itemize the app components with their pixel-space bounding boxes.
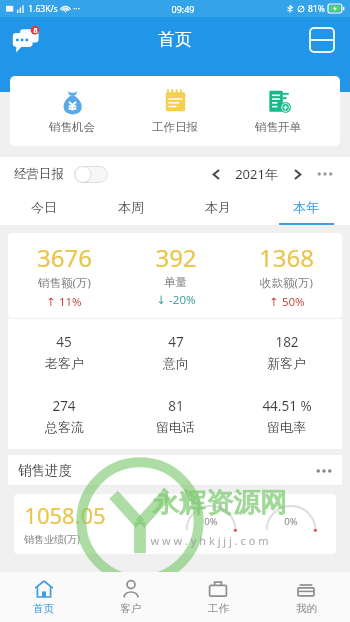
staticText: ↑ 50% xyxy=(269,294,305,310)
button[interactable]: Scan xyxy=(306,24,338,56)
staticText: ↑ 11% xyxy=(46,294,82,310)
button[interactable]: Next year xyxy=(286,163,308,185)
button[interactable]: 44.51 % xyxy=(231,397,342,435)
staticText: 我的 xyxy=(296,602,317,615)
staticText: 1.63K/s xyxy=(28,3,58,15)
button[interactable]: Messages xyxy=(9,23,43,57)
button[interactable]: 本年 xyxy=(262,191,350,223)
staticText: 274 xyxy=(52,397,76,415)
staticText: w w w . y h k j j j . c o m xyxy=(150,533,269,548)
staticText: 留电话 xyxy=(156,419,195,435)
staticText: 本周 xyxy=(118,199,144,215)
staticText: 销售额(万) xyxy=(38,275,91,291)
staticText: 客户 xyxy=(120,602,141,615)
staticText: ↓ -20% xyxy=(156,292,196,308)
staticText: 392 xyxy=(155,241,197,274)
staticText: 本月 xyxy=(205,199,231,215)
button[interactable]: 客户 xyxy=(87,572,174,622)
staticText: 本年 xyxy=(293,199,319,215)
staticText: 首页 xyxy=(158,29,192,50)
staticText: 销售业绩(万) xyxy=(24,532,80,546)
staticText: 工作 xyxy=(208,602,229,615)
staticText: 45 xyxy=(56,333,72,351)
staticText: 意向 xyxy=(163,355,189,371)
staticText: 47 xyxy=(168,333,184,351)
staticText: 首页 xyxy=(33,602,54,615)
staticText: 经营日报 xyxy=(14,166,64,182)
button[interactable]: 销售进度 xyxy=(18,455,332,486)
staticText: 44.51 % xyxy=(262,397,312,415)
staticText: 182 xyxy=(275,333,299,351)
staticText: 永辉资源网 xyxy=(152,486,287,520)
staticText: 0% xyxy=(204,515,218,528)
button[interactable]: 1368 xyxy=(231,241,342,310)
button[interactable]: 销售机会 xyxy=(31,86,113,136)
staticText: 1368 xyxy=(259,241,314,274)
staticText: 工作日报 xyxy=(152,120,198,134)
button[interactable]: 182 xyxy=(231,333,342,371)
staticText: 81% xyxy=(308,3,325,15)
staticText: 老客户 xyxy=(45,355,84,371)
button[interactable]: 本月 xyxy=(174,191,262,223)
button[interactable]: 首页 xyxy=(0,572,87,622)
staticText: 总客流 xyxy=(45,419,84,435)
button[interactable]: 81 xyxy=(120,397,231,435)
button[interactable]: 45 xyxy=(8,333,120,371)
button[interactable]: 本周 xyxy=(87,191,174,223)
staticText: 单量 xyxy=(164,275,187,289)
staticText: 8 xyxy=(33,26,38,36)
staticText: 2021年 xyxy=(235,165,278,183)
staticText: 销售开单 xyxy=(255,120,301,134)
button[interactable]: Previous year xyxy=(205,163,227,185)
button[interactable]: 工作日报 xyxy=(134,86,216,136)
button[interactable]: 今日 xyxy=(0,191,87,223)
staticText: 新客户 xyxy=(267,355,306,371)
staticText: 收款额(万) xyxy=(260,275,313,291)
button[interactable]: 47 xyxy=(120,333,231,371)
staticText: 3676 xyxy=(37,241,92,274)
staticText: ··· xyxy=(73,3,80,15)
staticText: 1058.05 xyxy=(24,500,106,530)
staticText: 留电率 xyxy=(267,419,306,435)
button[interactable]: More options xyxy=(314,163,336,185)
button[interactable]: 274 xyxy=(8,397,120,435)
staticText: 0% xyxy=(284,515,298,528)
button[interactable]: 工作 xyxy=(174,572,262,622)
staticText: 销售进度 xyxy=(18,462,72,479)
staticText: 09:49 xyxy=(171,3,195,15)
button[interactable]: 3676 xyxy=(8,241,120,310)
staticText: 81 xyxy=(168,397,184,415)
button[interactable]: 销售开单 xyxy=(237,86,319,136)
staticText: 销售机会 xyxy=(49,120,95,134)
button[interactable]: 392 xyxy=(120,241,231,308)
button[interactable]: 我的 xyxy=(262,572,350,622)
button[interactable]: Toggle daily report xyxy=(74,166,108,183)
staticText: 今日 xyxy=(31,199,57,215)
